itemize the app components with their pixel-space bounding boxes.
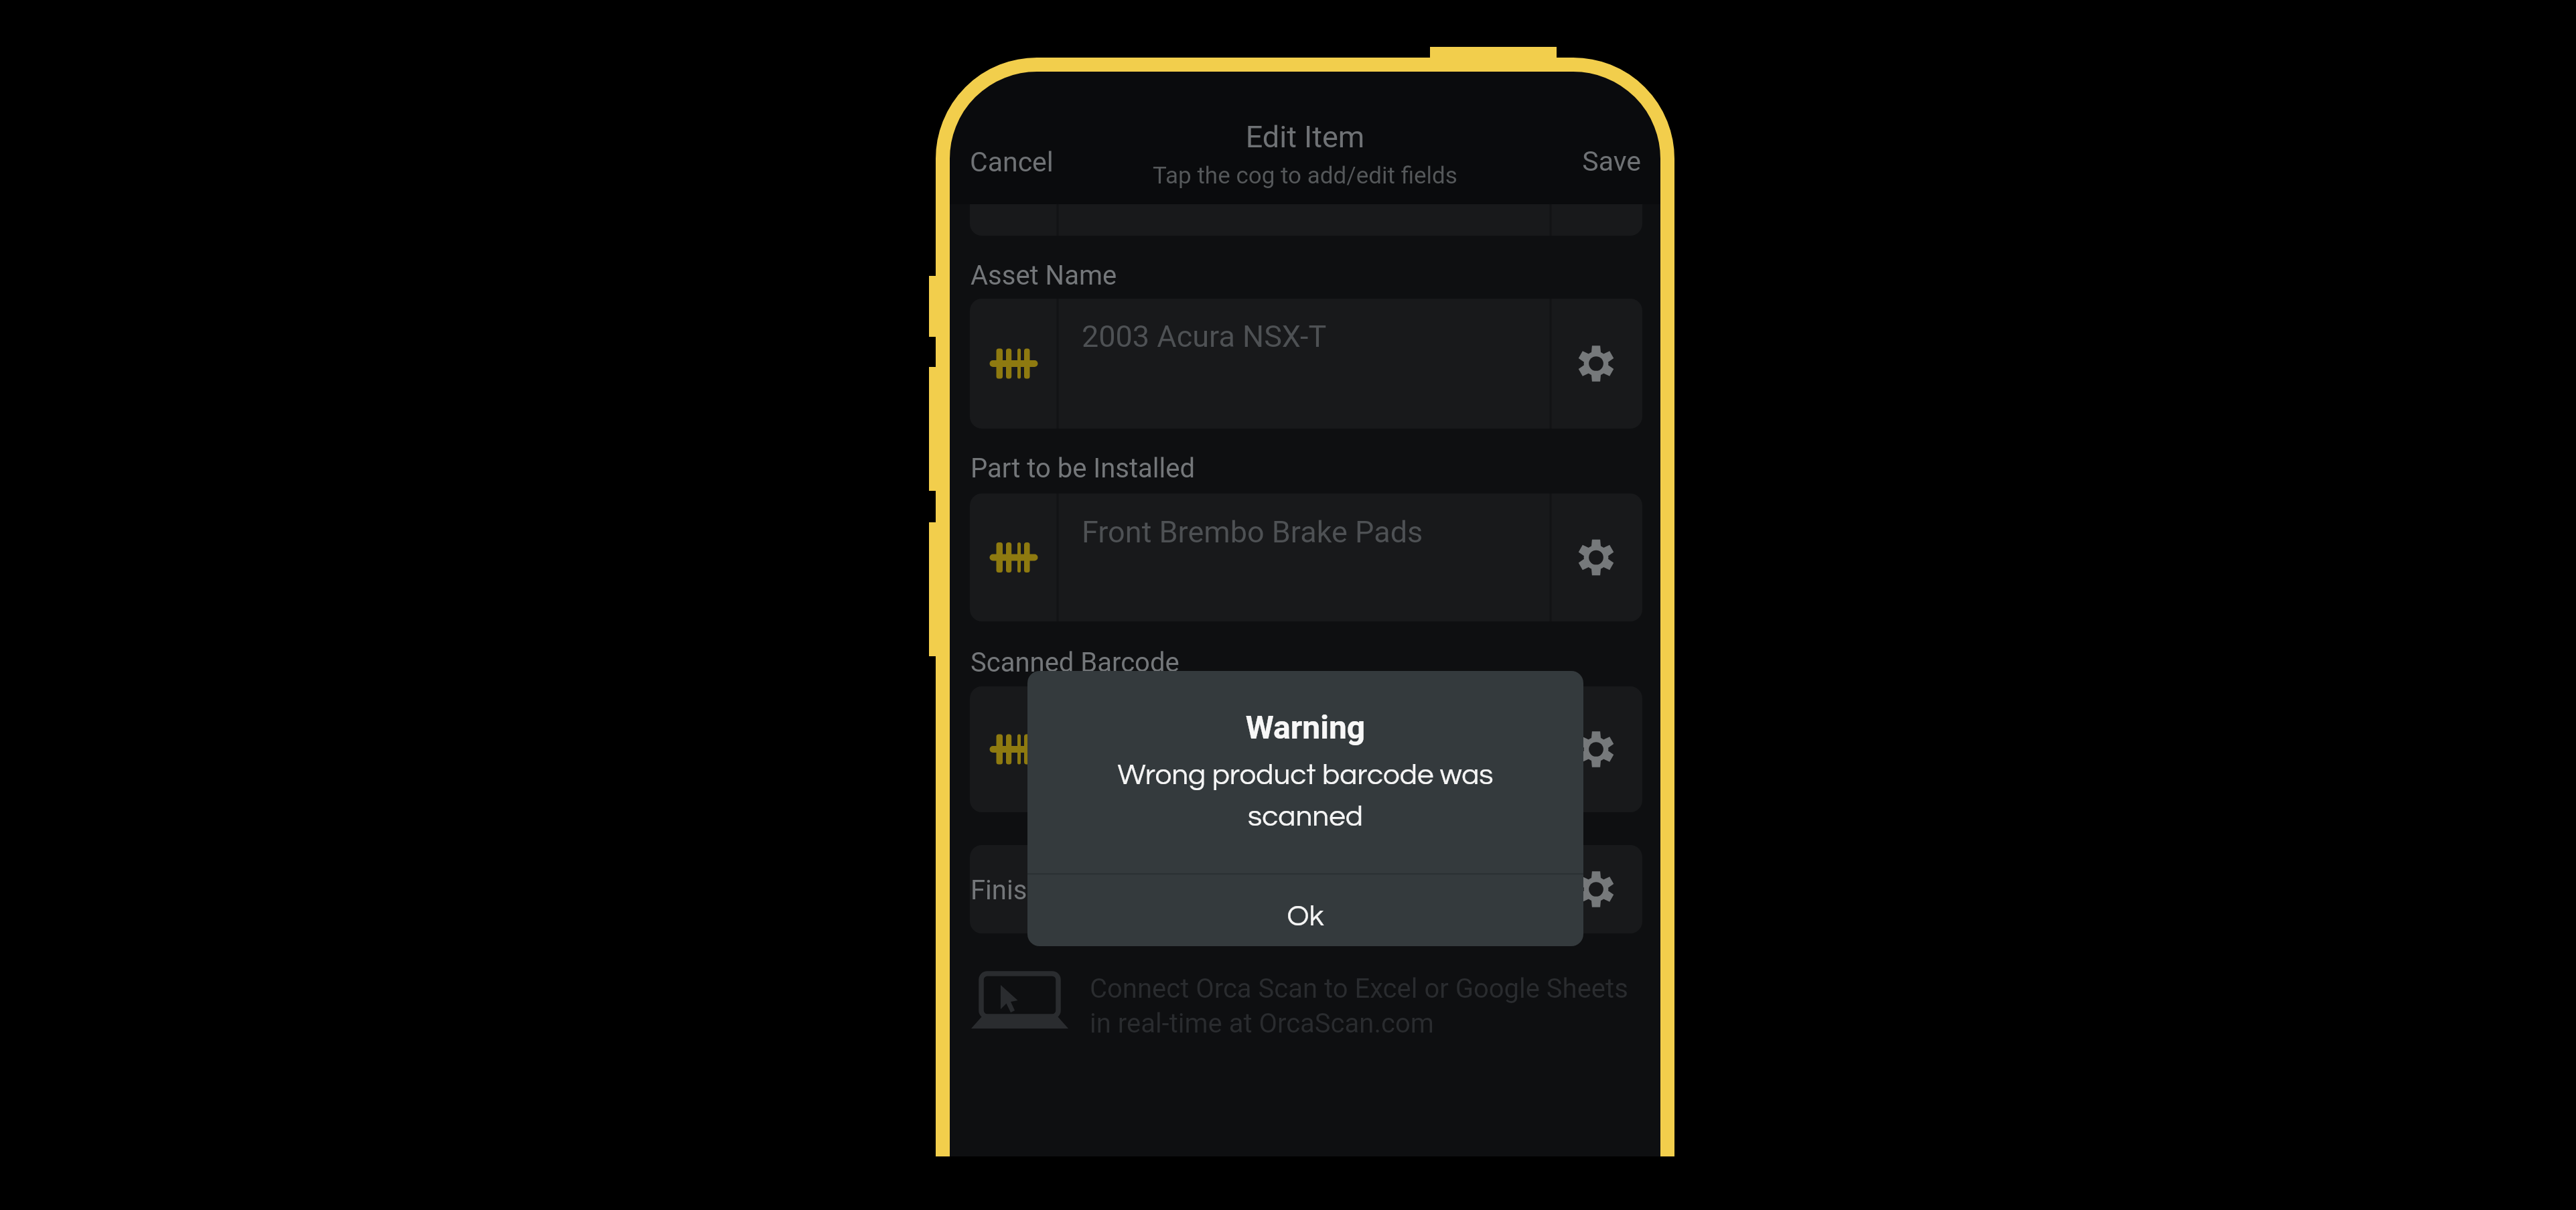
staticText: Edit Item	[950, 119, 1660, 155]
staticText: Warning	[1027, 708, 1583, 746]
button[interactable]: Scanned Barcode	[970, 686, 1551, 812]
staticText: Wrong product barcode was	[1027, 760, 1583, 790]
staticText: 2003 Acura NSX-T	[1082, 319, 1327, 354]
button[interactable]: Edit field settings	[1551, 686, 1642, 812]
button[interactable]: Edit field settings	[1551, 494, 1642, 621]
button[interactable]: Cancel	[963, 138, 1064, 182]
button[interactable]: Asset Name	[970, 299, 1551, 429]
button[interactable]: Edit field settings	[1551, 845, 1642, 933]
staticText: Part to be Installed	[971, 453, 1196, 484]
staticText: Tap the cog to add/edit fields	[950, 162, 1660, 190]
button[interactable]: Edit field settings	[1551, 299, 1642, 429]
staticText: scanned	[1027, 802, 1583, 832]
staticText: Save	[1561, 145, 1641, 177]
staticText: in real-time at OrcaScan.com	[1090, 1008, 1434, 1039]
staticText: Finish Date	[971, 875, 1104, 906]
button[interactable]: Ok	[1027, 873, 1583, 946]
staticText: Connect Orca Scan to Excel or Google She…	[1090, 973, 1628, 1004]
button[interactable]: Save	[1567, 138, 1648, 182]
button[interactable]: Finish Date	[970, 845, 1551, 933]
staticText: Front Brembo Brake Pads	[1082, 514, 1423, 550]
staticText: Cancel	[970, 146, 1054, 178]
staticText: Scanned Barcode	[971, 647, 1179, 678]
button[interactable]: Part to be Installed	[970, 494, 1551, 621]
staticText: Ok	[1027, 901, 1583, 931]
staticText: Asset Name	[971, 260, 1117, 291]
